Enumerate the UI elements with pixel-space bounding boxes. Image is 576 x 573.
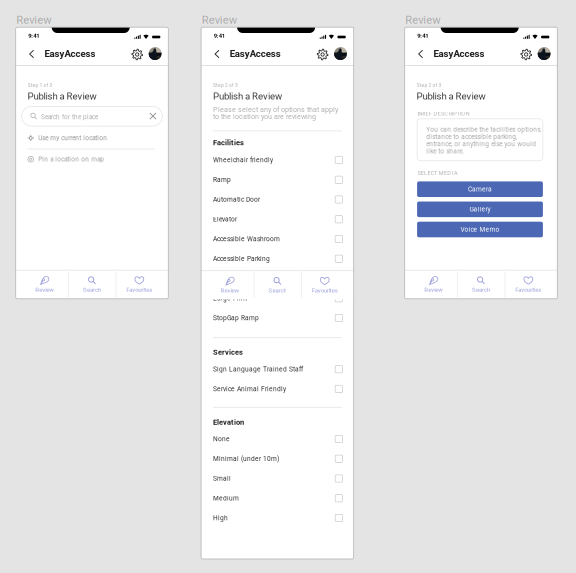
- staticText: Search for the place: [41, 113, 98, 121]
- staticText: Review: [35, 286, 54, 293]
- staticText: Voice Memo: [460, 226, 499, 233]
- button[interactable]: Search: [457, 272, 505, 296]
- staticText: High: [213, 514, 228, 522]
- button[interactable]: None: [213, 433, 342, 445]
- staticText: StopGap Ramp: [213, 314, 259, 322]
- button[interactable]: Profile: [334, 47, 347, 60]
- staticText: Accessible Parking: [213, 255, 270, 263]
- staticText: Search: [472, 286, 490, 293]
- button[interactable]: Camera: [417, 181, 543, 197]
- staticText: Elevation: [213, 418, 244, 426]
- button[interactable]: Braille: [213, 272, 342, 284]
- staticText: Medium: [213, 494, 239, 502]
- button[interactable]: Accessible Parking: [213, 253, 342, 265]
- button[interactable]: Minimal (under 10m): [213, 453, 342, 465]
- staticText: Step 2 of 3: [417, 82, 442, 88]
- button[interactable]: Settings: [316, 48, 329, 61]
- staticText: Search: [83, 286, 101, 293]
- staticText: Accessible Washroom: [213, 235, 280, 243]
- staticText: Camera: [468, 185, 492, 193]
- staticText: EasyAccess: [44, 48, 95, 59]
- staticText: BRIEF DESCRIPTION: [417, 110, 470, 117]
- button[interactable]: Large Print: [213, 292, 342, 304]
- staticText: Service Animal Friendly: [213, 385, 286, 393]
- staticText: Favourites: [312, 287, 338, 294]
- button[interactable]: High: [213, 512, 342, 524]
- staticText: Services: [213, 348, 243, 356]
- button[interactable]: Sign Language Trained Staff: [213, 363, 342, 375]
- button[interactable]: Automatic Door: [213, 193, 342, 205]
- staticText: Use my current location: [38, 134, 107, 142]
- button[interactable]: Back: [414, 47, 427, 60]
- staticText: You can describe the facilities options,…: [426, 126, 541, 155]
- button[interactable]: Elevator: [213, 213, 342, 225]
- button[interactable]: Review: [410, 272, 457, 296]
- button[interactable]: Favourites: [301, 273, 348, 297]
- button[interactable]: Profile: [538, 47, 550, 60]
- staticText: 9:41: [417, 32, 428, 39]
- button[interactable]: Wheelchair friendly: [213, 154, 342, 166]
- button[interactable]: Favourites: [505, 272, 552, 296]
- staticText: Wheelchair friendly: [213, 156, 273, 164]
- staticText: Sign Language Trained Staff: [213, 365, 303, 373]
- staticText: Review: [16, 13, 51, 26]
- staticText: Publish a Review: [213, 91, 282, 102]
- staticText: Please select any of options that apply …: [213, 105, 338, 121]
- button[interactable]: Service Animal Friendly: [213, 383, 342, 395]
- button[interactable]: Pin a location on map: [28, 154, 157, 165]
- staticText: Favourites: [515, 286, 541, 293]
- button[interactable]: Accessible Washroom: [213, 233, 342, 245]
- staticText: Large Print: [213, 294, 247, 302]
- button[interactable]: Settings: [519, 48, 533, 61]
- button[interactable]: Search: [68, 272, 116, 296]
- staticText: Elevator: [213, 215, 237, 223]
- staticText: Review: [405, 13, 440, 26]
- staticText: 9:41: [28, 32, 39, 39]
- staticText: EasyAccess: [433, 48, 484, 59]
- staticText: Review: [424, 286, 443, 293]
- button[interactable]: Voice Memo: [417, 222, 543, 237]
- staticText: Automatic Door: [213, 196, 260, 203]
- staticText: Step 2 of 3: [213, 82, 238, 88]
- button[interactable]: Use my current location: [28, 132, 157, 143]
- staticText: Review: [202, 13, 237, 26]
- staticText: Pin a location on map: [38, 155, 104, 163]
- button[interactable]: Ramp: [213, 174, 342, 186]
- button[interactable]: Back: [211, 47, 224, 60]
- staticText: Facilities: [213, 138, 244, 147]
- button[interactable]: Favourites: [116, 272, 163, 296]
- staticText: Search: [268, 287, 286, 294]
- staticText: Favourites: [126, 286, 152, 293]
- button[interactable]: Review: [21, 272, 68, 296]
- button[interactable]: Search: [254, 273, 301, 297]
- button[interactable]: Settings: [130, 48, 144, 61]
- button[interactable]: Clear: [149, 112, 157, 120]
- staticText: 9:41: [214, 32, 225, 39]
- button[interactable]: StopGap Ramp: [213, 312, 342, 324]
- staticText: Small: [213, 475, 231, 482]
- staticText: EasyAccess: [230, 48, 281, 59]
- button[interactable]: Medium: [213, 492, 342, 504]
- button[interactable]: Back: [25, 47, 38, 60]
- staticText: Publish a Review: [28, 91, 97, 102]
- staticText: Gallery: [469, 205, 490, 213]
- staticText: Minimal (under 10m): [213, 455, 279, 463]
- staticText: Step 1 of 3: [28, 82, 53, 88]
- staticText: Review: [221, 287, 240, 294]
- button[interactable]: Profile: [149, 47, 161, 60]
- staticText: Ramp: [213, 176, 231, 184]
- button[interactable]: Small: [213, 472, 342, 484]
- button[interactable]: Gallery: [417, 201, 543, 217]
- staticText: None: [213, 435, 230, 443]
- staticText: Braille: [213, 275, 233, 282]
- staticText: Publish a Review: [417, 91, 486, 102]
- button[interactable]: Review: [206, 273, 254, 297]
- staticText: SELECT MEDIA: [417, 170, 458, 176]
